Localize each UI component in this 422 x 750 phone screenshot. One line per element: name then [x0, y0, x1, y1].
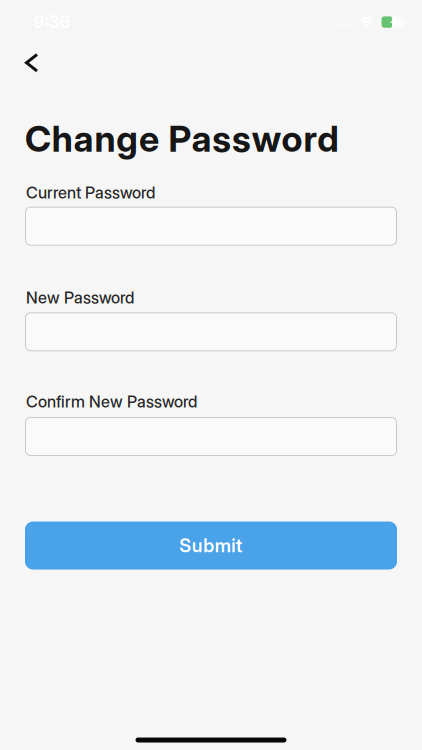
staticText: New Password [26, 288, 134, 307]
staticText: 9:36 [33, 11, 70, 32]
button[interactable]: Submit [25, 521, 397, 569]
button[interactable]: Back [17, 45, 46, 80]
staticText: Current Password [26, 183, 155, 203]
staticText: Change Password [25, 117, 339, 160]
staticText: Submit [179, 534, 243, 557]
staticText: Confirm New Password [26, 392, 197, 411]
